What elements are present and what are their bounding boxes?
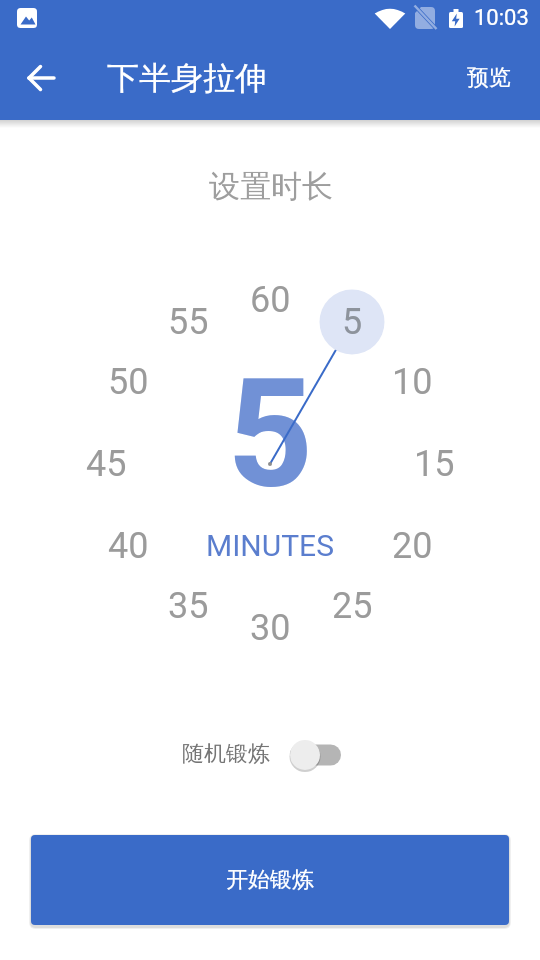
- staticText: MINUTES: [206, 528, 334, 563]
- staticText: 15: [414, 443, 455, 485]
- staticText: 55: [168, 301, 209, 343]
- staticText: 30: [250, 607, 291, 649]
- staticText: 下半身拉伸: [107, 58, 267, 98]
- staticText: 35: [168, 585, 209, 627]
- staticText: 10:03: [474, 5, 529, 31]
- staticText: 60: [250, 279, 291, 321]
- staticText: 25: [332, 585, 373, 627]
- staticText: 10: [392, 361, 433, 403]
- staticText: 40: [108, 525, 149, 567]
- button[interactable]: 预览: [431, 36, 511, 120]
- staticText: 随机锻炼: [182, 740, 270, 768]
- staticText: 开始锻炼: [226, 866, 314, 894]
- staticText: 5: [227, 347, 314, 523]
- button[interactable]: [17, 54, 65, 102]
- staticText: 5: [342, 301, 363, 343]
- staticText: 20: [392, 525, 433, 567]
- staticText: 45: [86, 443, 127, 485]
- staticText: 50: [108, 361, 149, 403]
- button[interactable]: [283, 738, 349, 772]
- button[interactable]: 开始锻炼: [31, 835, 509, 925]
- staticText: 设置时长: [209, 167, 333, 206]
- staticText: 预览: [467, 64, 511, 92]
